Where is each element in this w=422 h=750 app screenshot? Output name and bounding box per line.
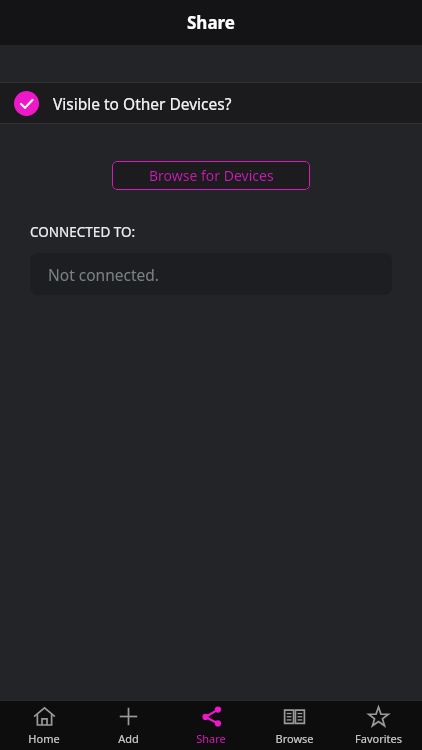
button[interactable]: Visible to Other Devices? [0,83,422,123]
button[interactable]: Not connected. [30,253,392,295]
staticText: Visible to Other Devices? [53,93,232,114]
staticText: Share [187,11,236,34]
staticText: Share [196,731,226,746]
button[interactable]: Add [89,701,167,750]
staticText: Not connected. [48,264,159,285]
staticText: CONNECTED TO: [30,223,136,241]
button[interactable]: Browse for Devices [112,161,310,190]
staticText: Browse for Devices [149,166,274,185]
button[interactable]: Favorites [339,701,417,750]
staticText: Home [28,731,60,746]
button[interactable]: Share [172,701,250,750]
staticText: Favorites [355,731,402,746]
staticText: Browse [275,731,314,746]
button[interactable]: Home [5,701,83,750]
staticText: Add [118,731,139,746]
button[interactable]: Browse [255,701,333,750]
